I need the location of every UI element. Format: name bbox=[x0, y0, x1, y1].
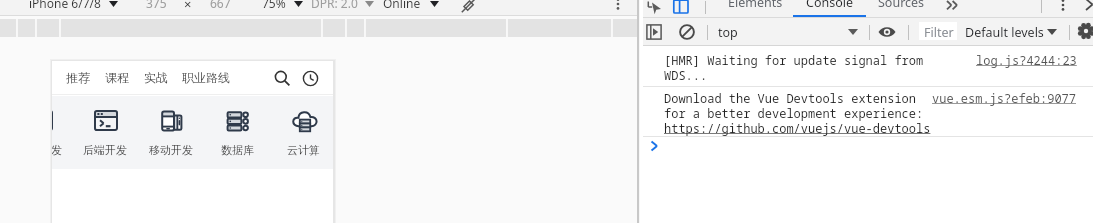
button[interactable]: Filter bbox=[919, 22, 957, 40]
staticText: Default levels bbox=[965, 24, 1044, 41]
staticText: DPR: 2.0 bbox=[311, 0, 358, 11]
staticText: Download the Vue Devtools extension for … bbox=[664, 90, 924, 122]
button[interactable]: Clear console bbox=[678, 23, 696, 41]
button[interactable]: 前端开发 bbox=[52, 96, 70, 157]
button[interactable]: Close DevTools bbox=[1081, 0, 1093, 12]
button[interactable]: More tabs bbox=[938, 0, 966, 18]
staticText: top bbox=[718, 24, 738, 41]
button[interactable]: 后端开发 bbox=[75, 96, 135, 157]
button[interactable]: 数据库 bbox=[207, 96, 267, 157]
button[interactable]: 实战 bbox=[142, 69, 170, 86]
button[interactable]: 移动开发 bbox=[141, 96, 201, 157]
button[interactable]: https://github.com/vuejs/vue-devtools bbox=[664, 120, 931, 136]
button[interactable]: Customize and control DevTools bbox=[1054, 0, 1072, 14]
button[interactable]: Online bbox=[383, 0, 421, 11]
staticText: 职业路线 bbox=[182, 70, 230, 85]
button[interactable]: Default levels bbox=[965, 18, 1044, 46]
button[interactable]: Console settings bbox=[1077, 22, 1093, 40]
button[interactable]: Search bbox=[272, 68, 292, 88]
button[interactable]: vue.esm.js?efeb:9077 bbox=[932, 90, 1077, 106]
staticText: 375 bbox=[146, 0, 167, 11]
button[interactable]: top bbox=[713, 18, 863, 46]
staticText: Filter bbox=[924, 24, 954, 41]
staticText: 实战 bbox=[144, 70, 168, 85]
staticText: 移动开发 bbox=[149, 143, 193, 157]
staticText: 前端开发 bbox=[52, 143, 62, 157]
staticText: iPhone 6/7/8 bbox=[29, 0, 101, 11]
staticText: vue.esm.js?efeb:9077 bbox=[932, 90, 1077, 106]
staticText: 数据库 bbox=[221, 143, 254, 157]
staticText: 667 bbox=[210, 0, 231, 11]
staticText: Sources bbox=[878, 0, 925, 11]
button[interactable]: DPR: 2.0 bbox=[311, 0, 358, 11]
button[interactable]: Elements bbox=[721, 0, 789, 18]
staticText: Console bbox=[806, 0, 854, 11]
button[interactable]: iPhone 6/7/8 bbox=[29, 0, 101, 11]
button[interactable]: Sources bbox=[867, 0, 936, 18]
button[interactable]: 推荐 bbox=[64, 69, 92, 86]
staticText: 后端开发 bbox=[83, 143, 127, 157]
button[interactable]: Show console sidebar bbox=[645, 23, 663, 41]
staticText: 云计算 bbox=[287, 143, 320, 157]
staticText: Elements bbox=[728, 0, 783, 11]
staticText: Online bbox=[383, 0, 421, 11]
button[interactable]: 课程 bbox=[103, 69, 131, 86]
button[interactable]: Rotate device bbox=[457, 0, 479, 13]
button[interactable]: Console bbox=[793, 0, 866, 18]
staticText: log.js?4244:23 bbox=[976, 52, 1077, 68]
button[interactable]: log.js?4244:23 bbox=[976, 52, 1077, 68]
staticText: × bbox=[184, 0, 192, 11]
staticText: 75% bbox=[262, 0, 286, 11]
button[interactable]: × bbox=[184, 0, 192, 11]
staticText: 推荐 bbox=[66, 70, 90, 85]
button[interactable]: 375 bbox=[146, 0, 167, 11]
button[interactable]: 云计算 bbox=[273, 96, 333, 157]
button[interactable]: More options bbox=[609, 0, 627, 12]
staticText: [HMR] Waiting for update signal from WDS… bbox=[664, 52, 924, 84]
button[interactable]: 75% bbox=[262, 0, 286, 11]
button[interactable]: History bbox=[300, 68, 320, 88]
button[interactable]: Toggle device toolbar bbox=[672, 0, 690, 16]
staticText: 课程 bbox=[105, 70, 129, 85]
button[interactable]: Create live expression bbox=[877, 22, 897, 42]
button[interactable]: 职业路线 bbox=[180, 69, 232, 86]
button[interactable]: Inspect element bbox=[645, 0, 663, 16]
staticText: https://github.com/vuejs/vue-devtools bbox=[664, 120, 931, 136]
button[interactable]: 667 bbox=[210, 0, 231, 11]
